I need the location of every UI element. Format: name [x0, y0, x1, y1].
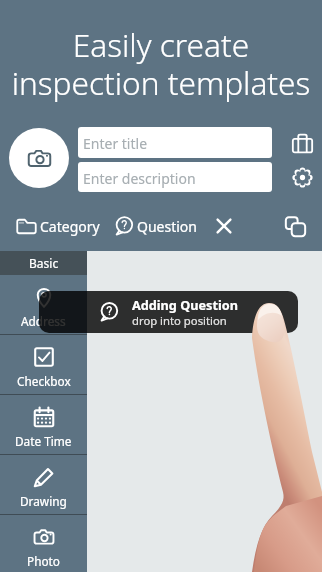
staticText: Photo: [27, 553, 60, 569]
button[interactable]: Add photo: [9, 128, 69, 188]
button[interactable]: Address: [0, 275, 87, 334]
button[interactable]: Close: [210, 212, 238, 240]
staticText: Easily create: [0, 23, 322, 66]
staticText: Basic: [29, 255, 59, 271]
staticText: drop into position: [132, 313, 227, 328]
button[interactable]: Photo: [0, 515, 87, 572]
staticText: Enter title: [83, 134, 148, 153]
staticText: Adding Question: [132, 296, 238, 313]
button[interactable]: Checkbox: [0, 335, 87, 394]
button[interactable]: Question: [114, 212, 197, 240]
button[interactable]: Duplicate: [281, 212, 309, 240]
staticText: Question: [137, 217, 197, 236]
button[interactable]: Settings: [288, 163, 316, 191]
staticText: Enter description: [83, 169, 196, 188]
button[interactable]: Enter description: [78, 162, 272, 192]
button[interactable]: Date Time: [0, 395, 87, 454]
staticText: inspection templates: [0, 61, 322, 104]
staticText: Drawing: [20, 493, 67, 509]
staticText: Address: [21, 313, 66, 329]
button[interactable]: Drawing: [0, 455, 87, 514]
staticText: Category: [40, 217, 100, 236]
button[interactable]: Enter title: [78, 127, 272, 158]
staticText: Date Time: [15, 433, 72, 449]
staticText: Checkbox: [17, 373, 71, 389]
button[interactable]: Adding Question: [39, 291, 298, 333]
button[interactable]: Templates: [288, 129, 316, 157]
button[interactable]: Category: [16, 212, 100, 241]
